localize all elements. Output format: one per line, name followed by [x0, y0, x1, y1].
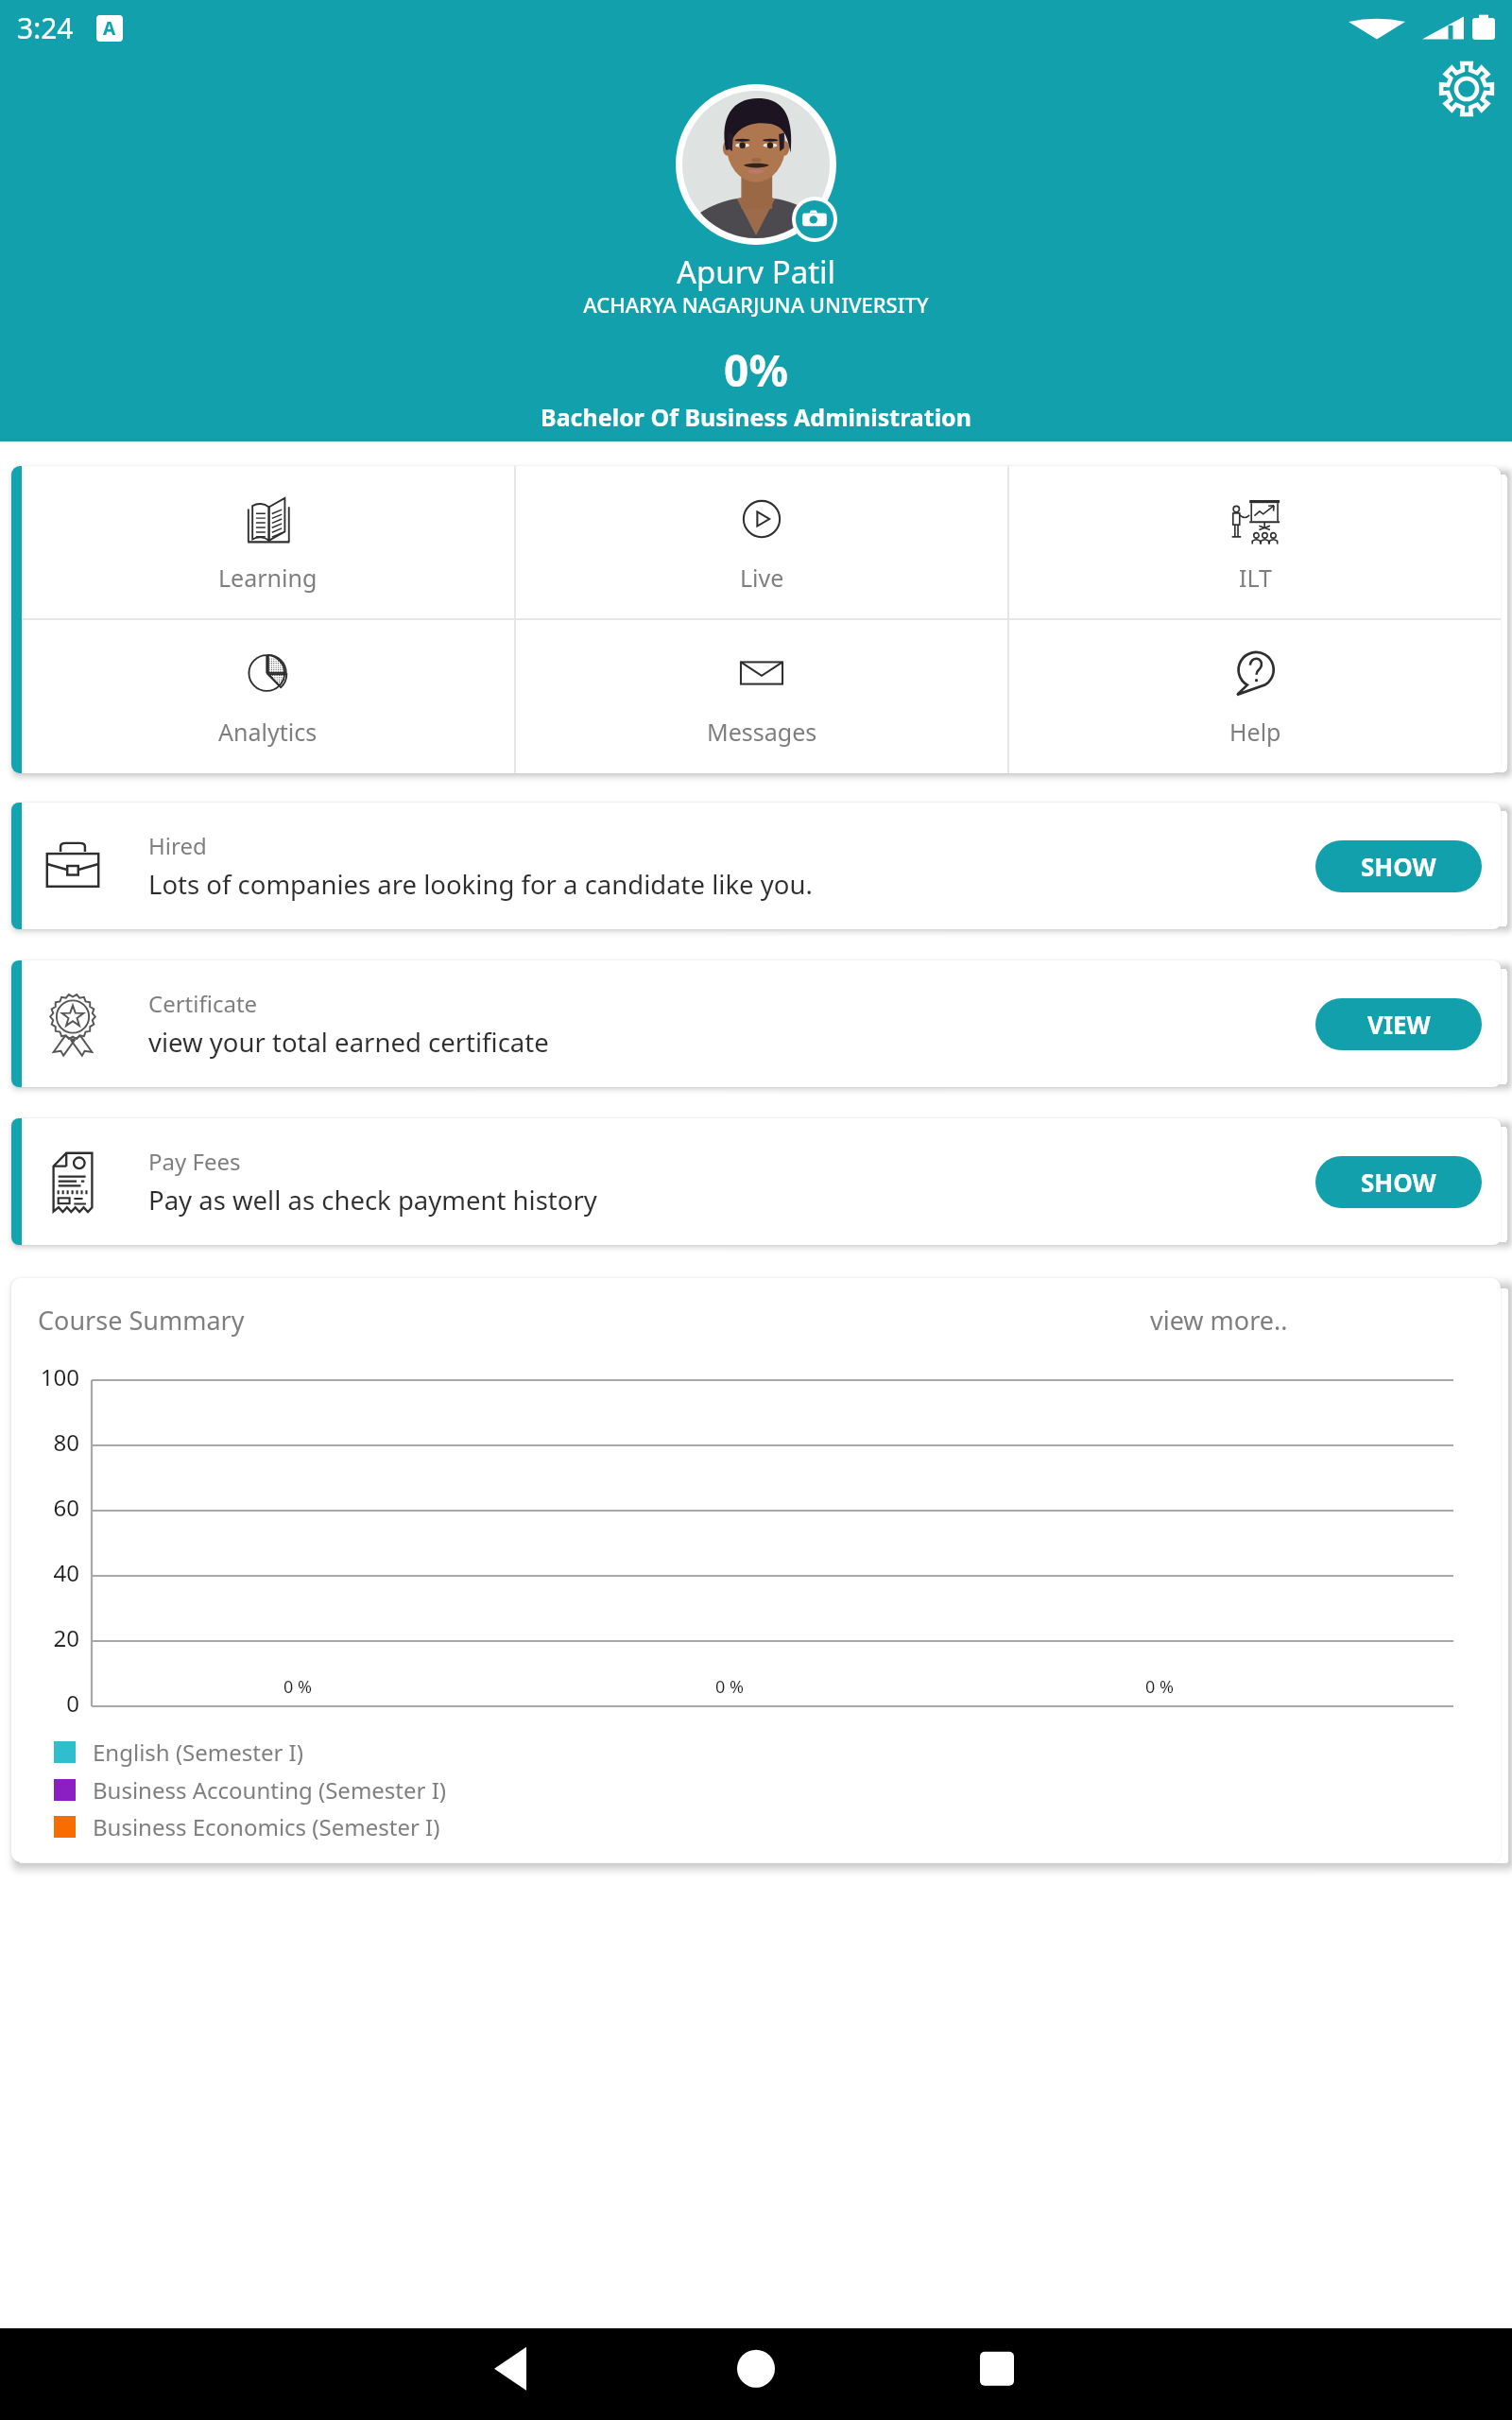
button[interactable]: Analytics: [22, 620, 514, 773]
staticText: 3:24: [17, 9, 74, 47]
staticText: Pay Fees: [148, 1146, 241, 1177]
staticText: ILT: [1239, 562, 1272, 594]
button[interactable]: Messages: [516, 620, 1007, 773]
staticText: Analytics: [218, 716, 318, 748]
staticText: 0%: [0, 340, 1512, 400]
staticText: 40: [11, 1557, 79, 1588]
staticText: SHOW: [1361, 1166, 1436, 1199]
button[interactable]: Pay Fees: [11, 1118, 1501, 1245]
staticText: Business Accounting (Semester I): [93, 1774, 447, 1806]
staticText: 100: [11, 1361, 79, 1392]
staticText: Business Economics (Semester I): [93, 1811, 440, 1842]
staticText: Learning: [218, 562, 318, 594]
button[interactable]: Certificate: [11, 960, 1501, 1087]
staticText: 20: [11, 1622, 79, 1653]
staticText: 80: [11, 1426, 79, 1458]
button[interactable]: view more..: [1150, 1303, 1288, 1338]
staticText: A: [103, 16, 116, 41]
staticText: ACHARYA NAGARJUNA UNIVERSITY: [0, 290, 1512, 319]
staticText: 0: [11, 1687, 79, 1719]
button[interactable]: Home: [709, 2328, 803, 2420]
staticText: 60: [11, 1492, 79, 1523]
button[interactable]: Hired: [11, 803, 1501, 929]
button[interactable]: SHOW: [1315, 840, 1482, 892]
staticText: Certificate: [148, 988, 258, 1019]
staticText: Lots of companies are looking for a cand…: [148, 867, 813, 902]
button[interactable]: Learning: [22, 466, 514, 618]
button[interactable]: VIEW: [1315, 998, 1482, 1050]
staticText: Apurv Patil: [0, 251, 1512, 293]
button[interactable]: Settings: [1435, 57, 1499, 121]
button[interactable]: Help: [1009, 620, 1501, 773]
button[interactable]: Course Summary: [38, 1303, 245, 1338]
staticText: VIEW: [1367, 1008, 1431, 1041]
staticText: Bachelor Of Business Administration: [0, 401, 1512, 433]
staticText: view your total earned certificate: [148, 1025, 549, 1060]
staticText: Help: [1229, 716, 1281, 748]
button[interactable]: Recent apps: [950, 2328, 1044, 2420]
button[interactable]: ILT: [1009, 466, 1501, 618]
staticText: Pay as well as check payment history: [148, 1183, 597, 1218]
button[interactable]: SHOW: [1315, 1156, 1482, 1208]
staticText: 0 %: [715, 1675, 744, 1699]
button[interactable]: Back: [464, 2328, 558, 2420]
staticText: Hired: [148, 830, 207, 861]
staticText: Live: [740, 562, 784, 594]
staticText: SHOW: [1361, 850, 1436, 883]
staticText: Course Summary: [38, 1303, 245, 1338]
staticText: Messages: [707, 716, 817, 748]
staticText: 0 %: [1145, 1675, 1174, 1699]
button[interactable]: Change profile photo: [796, 200, 833, 238]
staticText: view more..: [1150, 1303, 1288, 1338]
staticText: 0 %: [283, 1675, 312, 1699]
staticText: English (Semester I): [93, 1737, 303, 1768]
button[interactable]: Live: [516, 466, 1007, 618]
